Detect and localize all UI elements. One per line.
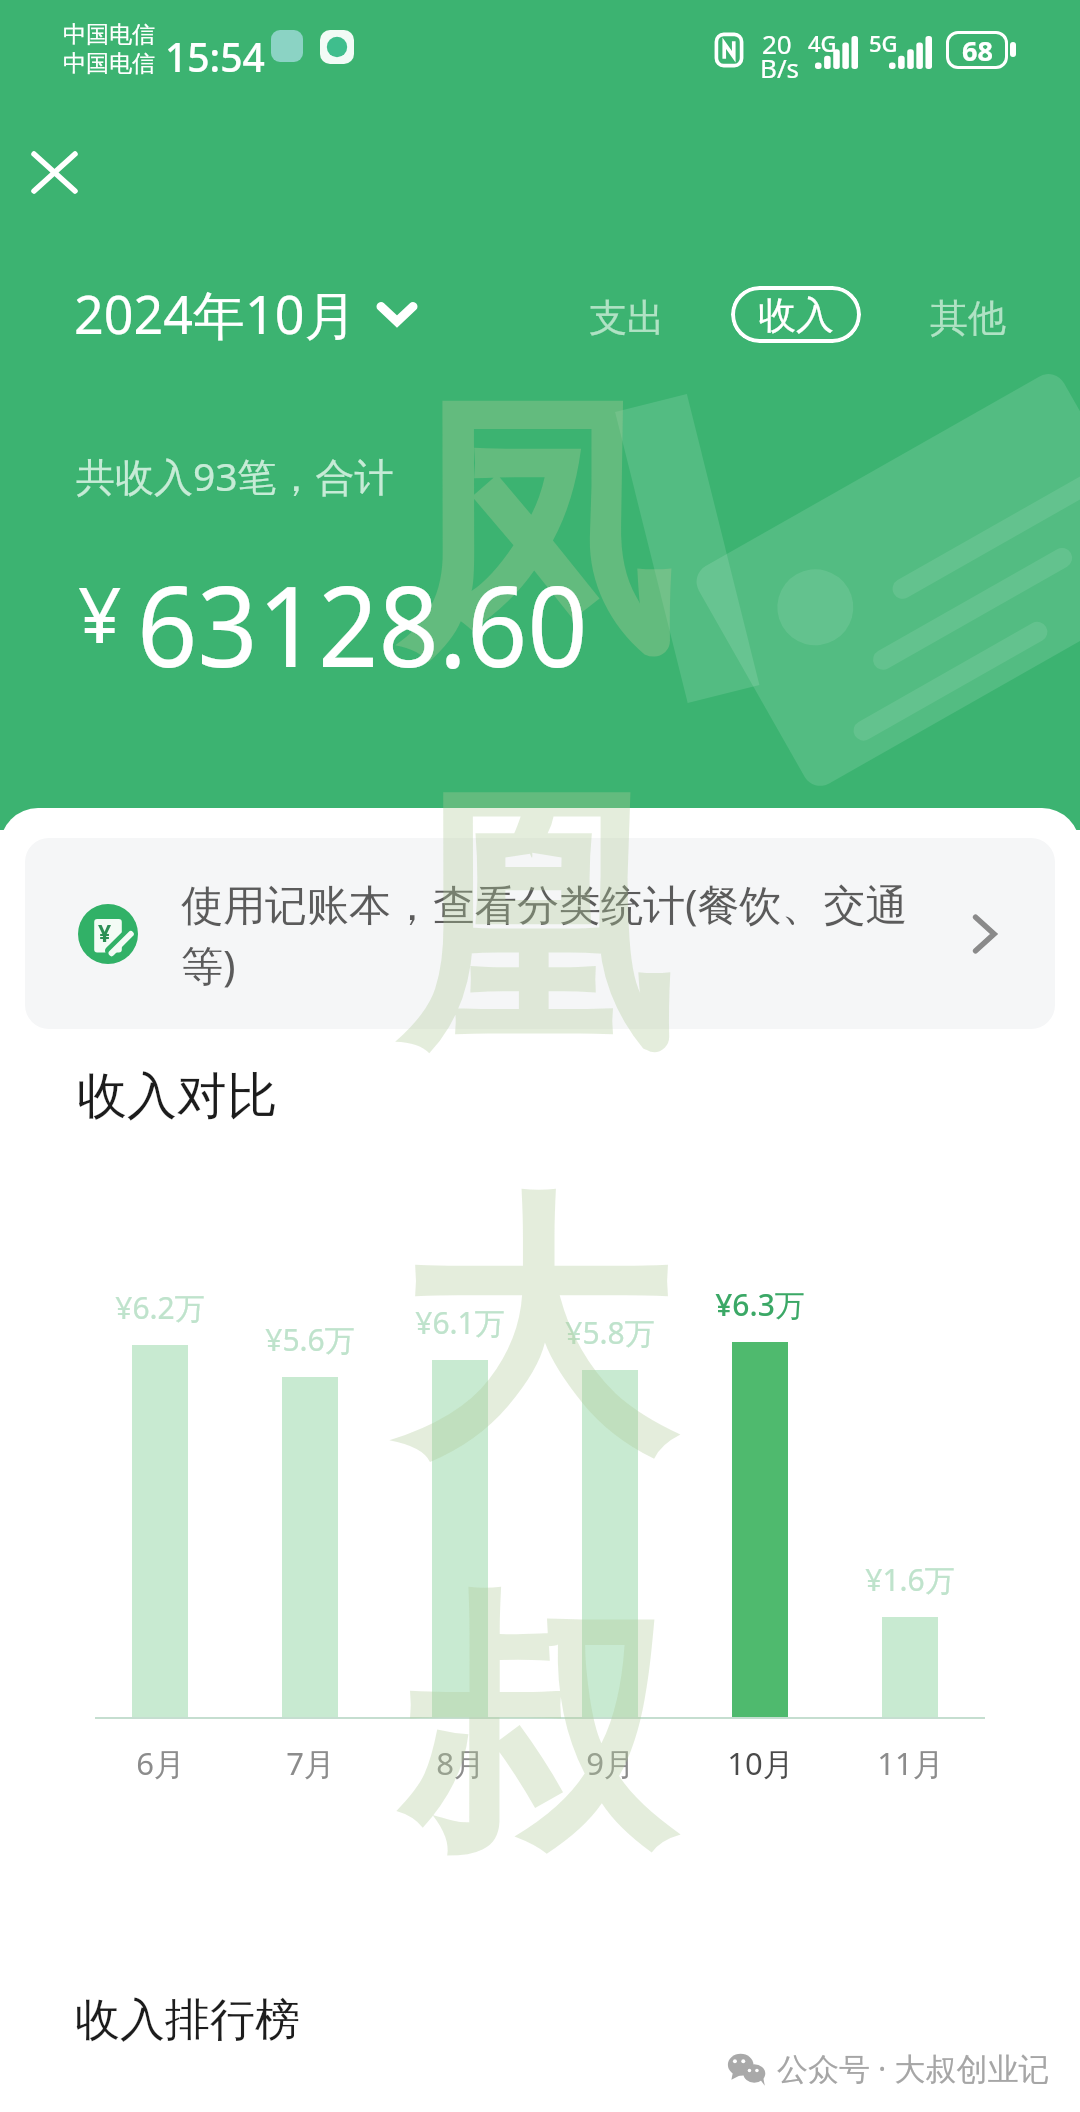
staticText: 支出 — [589, 294, 665, 342]
staticText: ¥ — [78, 562, 122, 666]
staticText: ¥1.6万 — [865, 1559, 955, 1600]
staticText: 6月 — [136, 1742, 185, 1784]
staticText: B/s — [760, 50, 800, 85]
staticText: 63128.60 — [137, 547, 588, 700]
staticText: ¥5.6万 — [265, 1319, 355, 1360]
staticText: 68 — [962, 32, 993, 69]
staticText: 凤 — [397, 362, 672, 708]
button[interactable]: 支出 — [571, 278, 683, 358]
staticText: 11月 — [877, 1742, 944, 1784]
button[interactable]: ¥ — [25, 838, 1055, 1029]
staticText: 9月 — [586, 1742, 635, 1784]
staticText: 7月 — [286, 1742, 335, 1784]
staticText: 2024年10月 — [74, 278, 357, 349]
staticText: 叔 — [397, 1560, 672, 1906]
staticText: 收入排行榜 — [75, 1992, 300, 2049]
staticText: ¥6.1万 — [415, 1302, 505, 1343]
staticText: ¥6.2万 — [115, 1287, 205, 1328]
staticText: 收入 — [758, 291, 834, 339]
staticText: 20 — [762, 26, 792, 61]
staticText: 收入对比 — [77, 1065, 277, 1128]
button[interactable]: Close — [12, 130, 96, 214]
button[interactable]: 2024年10月 — [62, 278, 429, 349]
staticText: 中国电信 — [63, 49, 155, 78]
staticText: 10月 — [727, 1742, 794, 1784]
staticText: 中国电信 — [63, 20, 155, 49]
staticText: 5G — [869, 28, 898, 58]
staticText: 4G — [808, 28, 837, 58]
button[interactable]: 收入 — [731, 286, 861, 343]
staticText: 其他 — [930, 294, 1006, 342]
staticText: 共收入93笔，合计 — [76, 449, 394, 502]
button[interactable]: 其他 — [912, 278, 1024, 358]
staticText: 公众号 · 大叔创业记 — [777, 2047, 1050, 2089]
staticText: 15:54 — [165, 30, 265, 83]
staticText: ¥6.3万 — [715, 1284, 805, 1325]
staticText: ¥ — [98, 917, 112, 948]
staticText: ¥5.8万 — [565, 1312, 655, 1353]
staticText: 8月 — [436, 1742, 485, 1784]
staticText: 凰 — [397, 755, 672, 1101]
staticText: 使用记账本，查看分类统计(餐饮、交通等) — [181, 875, 936, 993]
staticText: 大 — [397, 1162, 672, 1508]
